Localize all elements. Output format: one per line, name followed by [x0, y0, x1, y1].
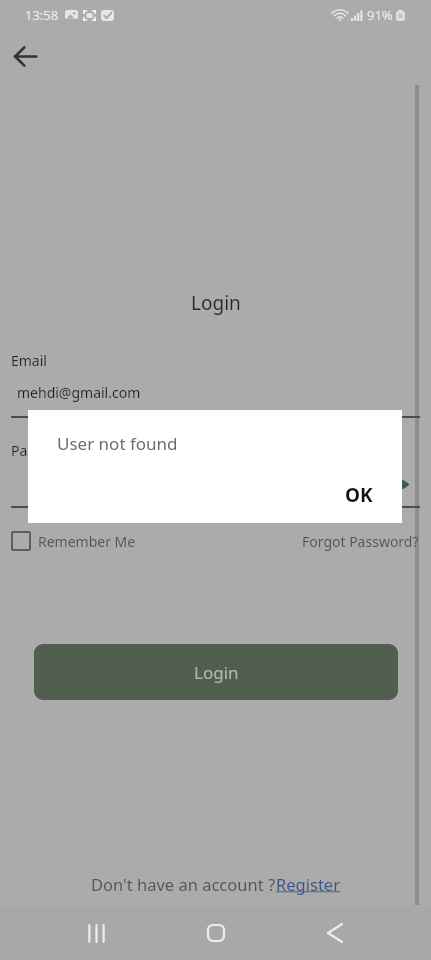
button[interactable]: Login	[34, 644, 398, 700]
button[interactable]: Back	[7, 38, 43, 74]
staticText: 13:58	[25, 6, 59, 24]
button[interactable]: Toggle password visibility	[386, 472, 410, 496]
staticText: mehdi@gmail.com	[17, 383, 141, 402]
button[interactable]: OK	[345, 482, 373, 508]
staticText: Email	[11, 351, 47, 370]
button[interactable]: Home	[192, 909, 240, 957]
staticText: Login	[191, 290, 241, 316]
button[interactable]: Recent apps	[72, 909, 120, 957]
button[interactable]: Register	[276, 873, 340, 895]
button[interactable]: Back	[311, 909, 359, 957]
staticText: Login	[194, 661, 239, 684]
staticText: Password	[11, 441, 75, 460]
staticText: Don't have an account ?	[91, 873, 276, 895]
button[interactable]: Remember Me	[11, 531, 136, 551]
staticText: User not found	[57, 432, 178, 455]
staticText: OK	[345, 482, 373, 508]
staticText: 91%	[367, 6, 393, 24]
button[interactable]: Forgot Password?	[302, 532, 419, 551]
staticText: Remember Me	[38, 532, 136, 551]
